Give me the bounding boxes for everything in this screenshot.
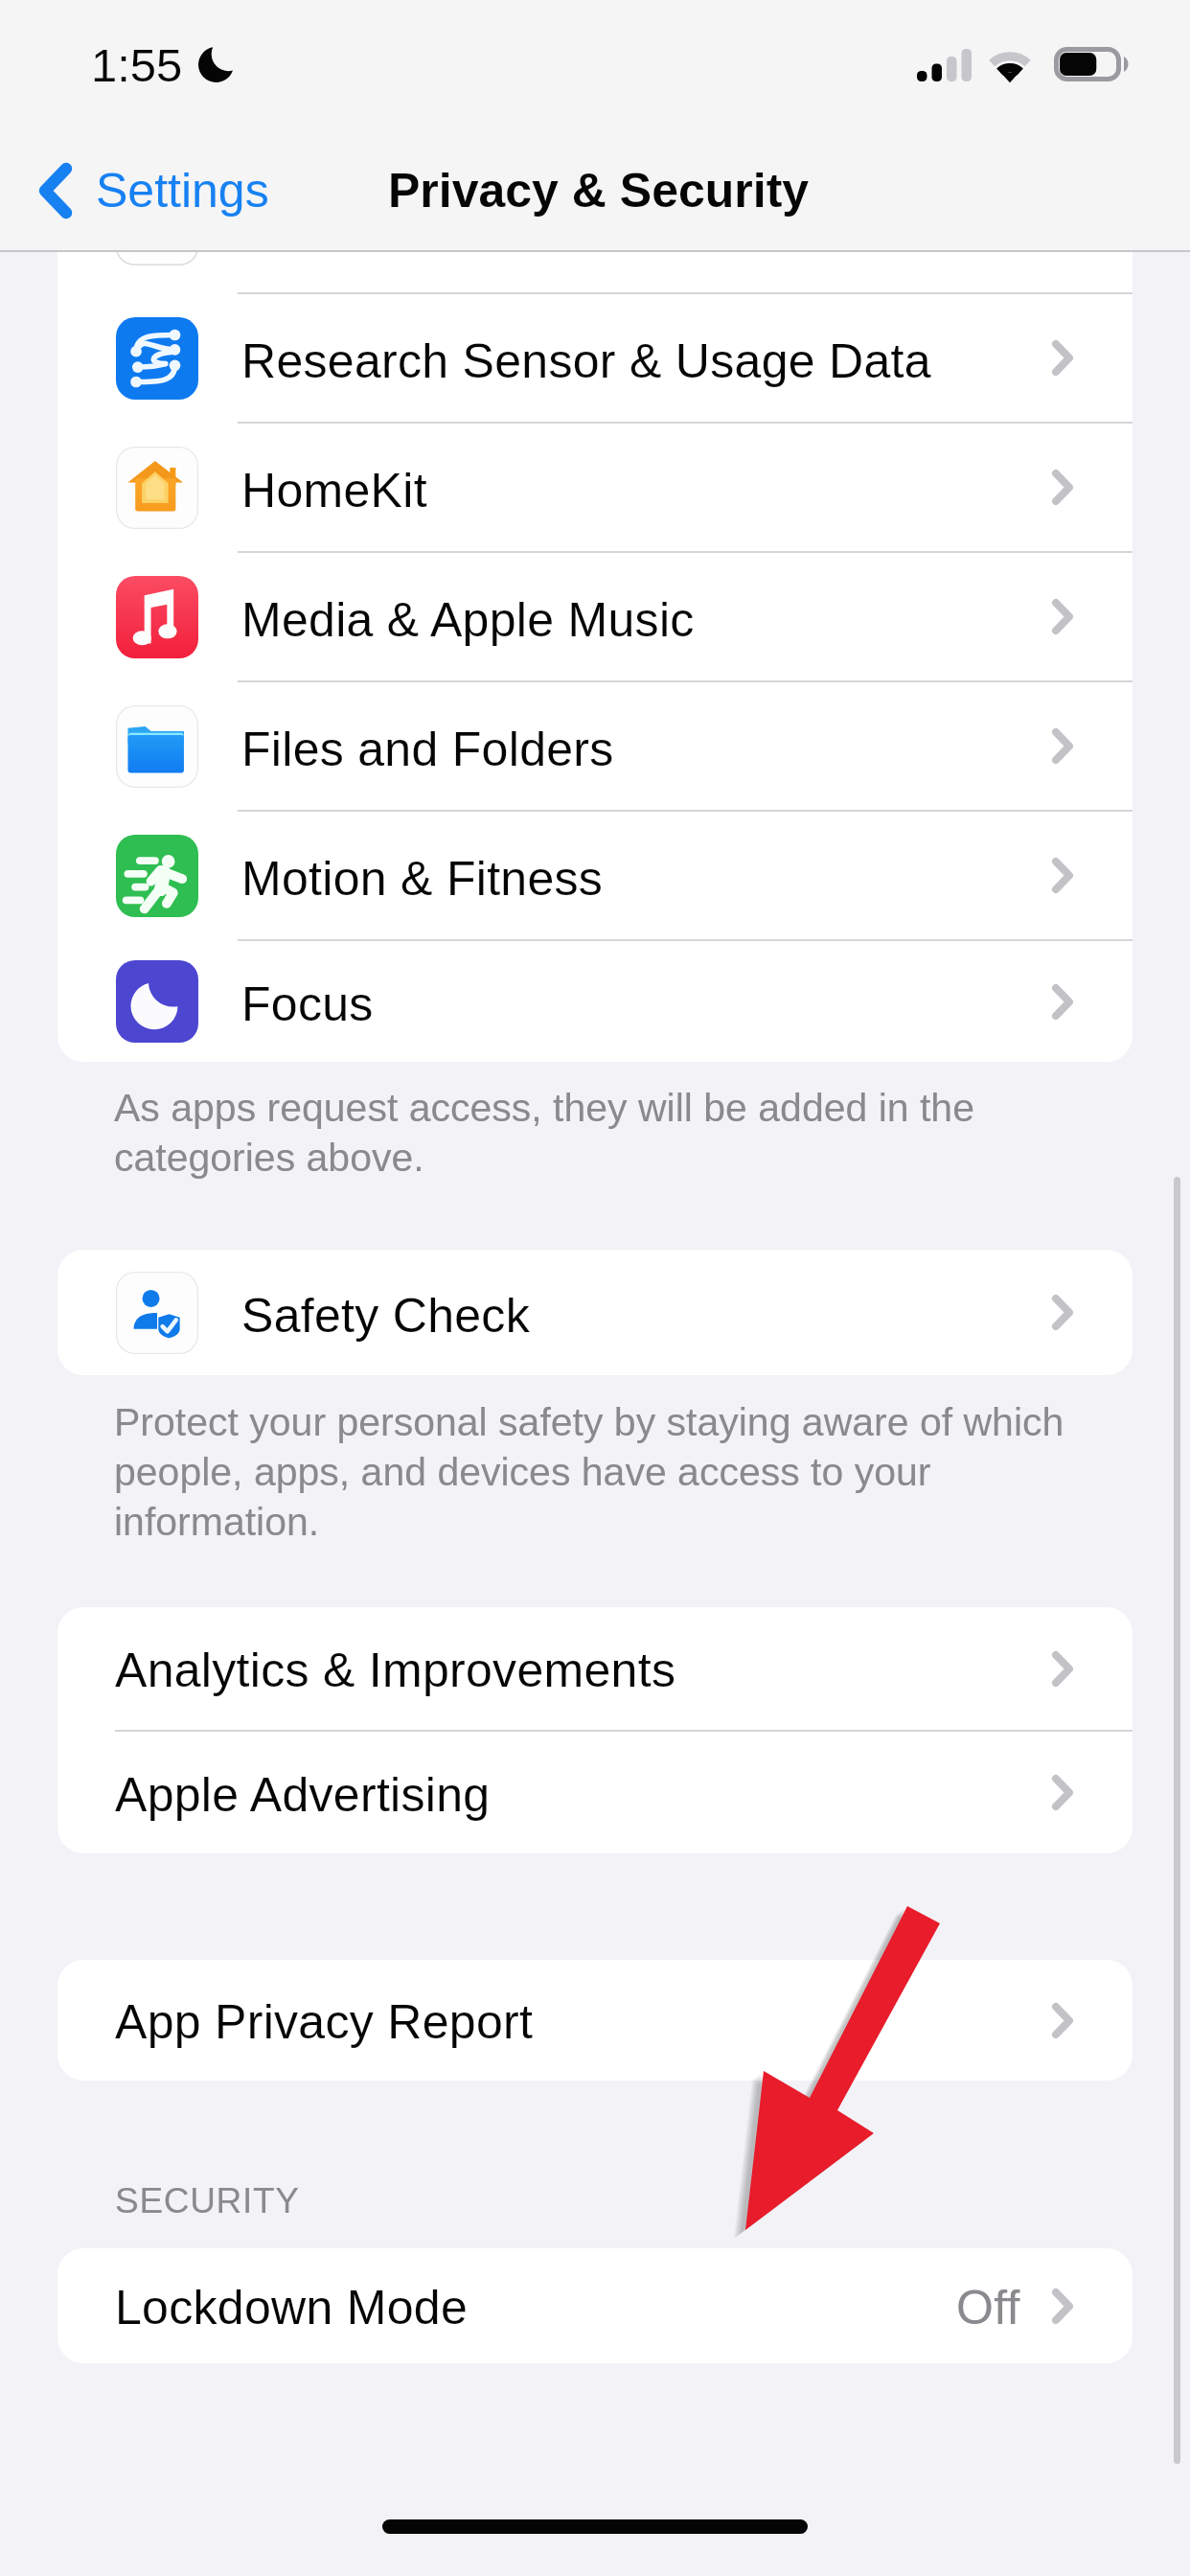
staticText: Off (956, 2281, 1020, 2334)
button[interactable]: Lockdown Mode (57, 2248, 1133, 2363)
staticText: Protect your personal safety by staying … (114, 1400, 1082, 1543)
staticText: Files and Folders (241, 723, 614, 776)
staticText: HomeKit (241, 464, 427, 517)
button[interactable]: Safety Check (57, 1250, 1133, 1375)
staticText: Analytics & Improvements (115, 1644, 676, 1697)
staticText: Settings (96, 164, 269, 218)
button[interactable]: Back to Settings (29, 149, 279, 232)
staticText: Focus (241, 977, 374, 1031)
button[interactable]: Apple Advertising (57, 1732, 1133, 1853)
staticText: SECURITY (115, 2181, 300, 2220)
staticText: Motion & Fitness (241, 852, 604, 906)
button[interactable]: Research Sensor & Usage Data (57, 294, 1133, 422)
staticText: 1:55 (91, 39, 183, 92)
button[interactable]: Files and Folders (57, 682, 1133, 810)
staticText: Apple Advertising (115, 1768, 491, 1822)
staticText: As apps request access, they will be add… (114, 1086, 1082, 1179)
button[interactable]: Media & Apple Music (57, 553, 1133, 680)
staticText: Safety Check (241, 1289, 530, 1343)
staticText: Lockdown Mode (115, 2281, 469, 2334)
button[interactable]: Motion & Fitness (57, 812, 1133, 939)
button[interactable]: Analytics & Improvements (57, 1607, 1133, 1730)
staticText: Media & Apple Music (241, 593, 695, 647)
staticText: Privacy & Security (388, 164, 810, 218)
staticText: Research Sensor & Usage Data (241, 334, 931, 388)
button[interactable]: Focus (57, 941, 1133, 1062)
button[interactable]: App Privacy Report (57, 1960, 1133, 2081)
staticText: App Privacy Report (115, 1995, 534, 2049)
button[interactable]: HomeKit (57, 424, 1133, 551)
